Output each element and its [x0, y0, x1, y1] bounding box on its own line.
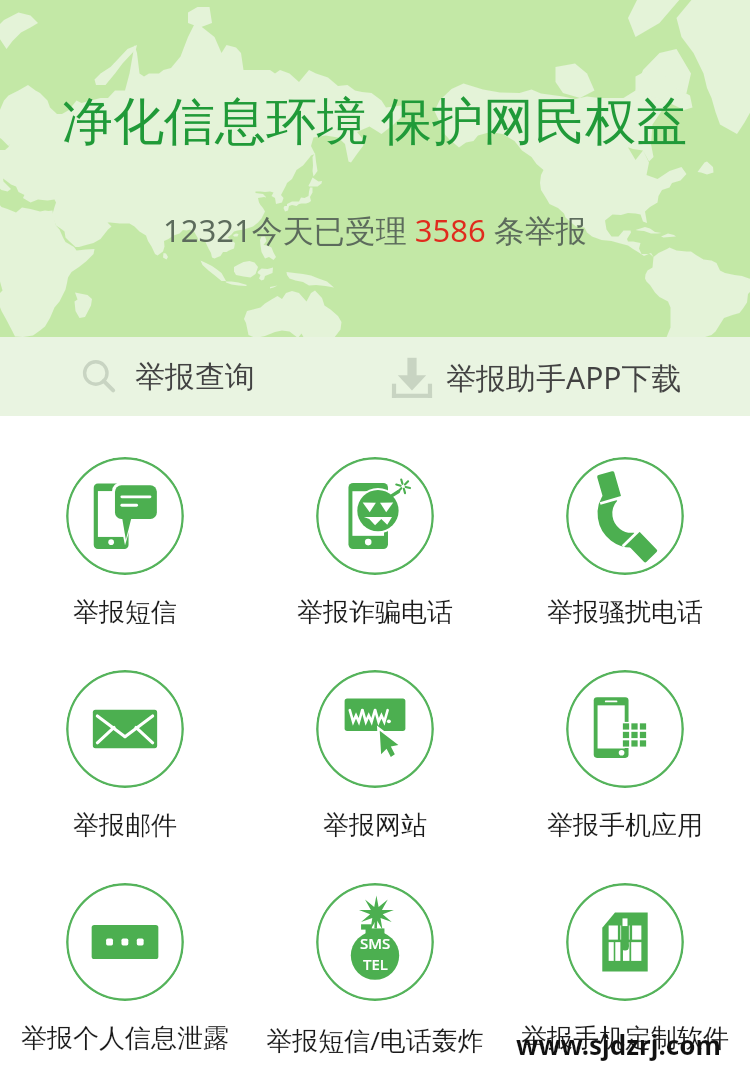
staticText: SMS	[360, 933, 391, 953]
button[interactable]: 举报手机定制软件	[500, 883, 750, 1055]
staticText: 举报网站	[323, 809, 427, 842]
staticText: 举报邮件	[73, 809, 177, 842]
button[interactable]: 举报查询	[0, 357, 375, 397]
button[interactable]: 举报助手APP下载	[375, 355, 750, 399]
staticText: 12321今天已受理 3586 条举报	[163, 209, 587, 251]
button[interactable]: 举报手机应用	[500, 670, 750, 842]
staticText: 举报个人信息泄露	[21, 1022, 229, 1055]
staticText: 举报助手APP下载	[446, 357, 682, 398]
staticText: TEL	[363, 954, 388, 974]
staticText: 举报诈骗电话	[297, 596, 453, 629]
button[interactable]: SMS	[250, 883, 500, 1058]
button[interactable]: 举报个人信息泄露	[0, 883, 250, 1055]
staticText: 净化信息环境 保护网民权益	[62, 84, 688, 154]
staticText: www.sjdzrj.com	[516, 1027, 721, 1062]
button[interactable]: 举报网站	[250, 670, 500, 842]
button[interactable]: 举报骚扰电话	[500, 457, 750, 629]
staticText: 举报手机定制软件	[521, 1022, 729, 1055]
staticText: 举报手机应用	[547, 809, 703, 842]
staticText: 举报骚扰电话	[547, 596, 703, 629]
button[interactable]: 举报短信	[0, 457, 250, 629]
button[interactable]: 举报邮件	[0, 670, 250, 842]
staticText: 举报短信	[73, 596, 177, 629]
staticText: 举报查询	[135, 358, 255, 396]
staticText: 举报短信/电话轰炸	[266, 1022, 484, 1058]
button[interactable]: 举报诈骗电话	[250, 457, 500, 629]
